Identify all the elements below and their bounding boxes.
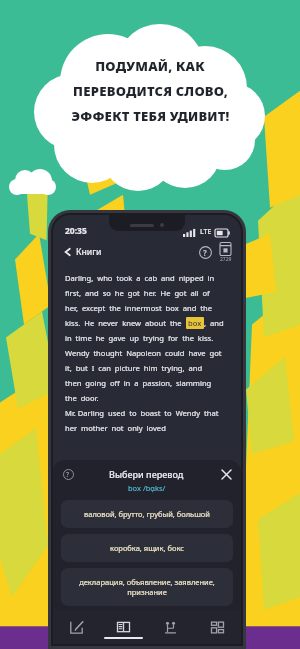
button[interactable]: Dictionary 2729 — [219, 242, 232, 263]
staticText: first, and so he got her. He got all of — [65, 288, 210, 298]
button[interactable]: коробка, ящик, бокс — [61, 534, 233, 562]
staticText: box — [188, 318, 202, 328]
staticText: 2729 — [220, 256, 232, 263]
staticText: ? — [66, 470, 70, 479]
button[interactable]: Help — [195, 242, 215, 262]
button[interactable]: Write — [53, 610, 100, 644]
button[interactable]: Hint — [61, 467, 75, 481]
staticText: ЭФФЕКТ ТЕБЯ УДИВИТ! — [71, 107, 230, 125]
staticText: ? — [203, 247, 207, 258]
staticText: it, but I can picture him trying, and — [65, 363, 203, 373]
staticText: Mr. Darling used to boast to Wendy that — [65, 408, 219, 418]
button[interactable]: Progress — [147, 610, 194, 644]
staticText: ПЕРЕВОДИТСЯ СЛОВО, — [73, 82, 228, 100]
staticText: then going off in a passion, slamming — [65, 378, 212, 388]
button[interactable]: декларация, объявление, заявление, призн… — [61, 568, 233, 606]
staticText: Wendy thought Napoleon could have got — [65, 348, 222, 358]
staticText: 20:35 — [65, 225, 87, 237]
staticText: Darling, who took a cab and nipped in — [65, 273, 215, 283]
staticText: LTE — [200, 227, 212, 237]
staticText: box /bɑ̩ks/ — [128, 483, 166, 493]
staticText: валовой, брутто, грубый, большой — [84, 509, 210, 519]
staticText: декларация, объявление, заявление, призн… — [79, 577, 215, 597]
staticText: Выбери перевод — [109, 468, 184, 480]
staticText: ПОДУМАЙ, КАК — [95, 57, 205, 75]
staticText: Книги — [76, 246, 102, 258]
button[interactable]: More — [194, 610, 241, 644]
staticText: her, except the innermost box and the — [65, 303, 212, 313]
staticText: the door. — [65, 393, 99, 403]
staticText: коробка, ящик, бокс — [110, 543, 184, 553]
button[interactable]: Books — [100, 610, 147, 644]
button[interactable]: валовой, брутто, грубый, большой — [61, 500, 233, 528]
staticText: in time he gave up trying for the kiss. — [65, 333, 214, 343]
button[interactable]: Книги — [61, 243, 104, 261]
button[interactable]: Close — [219, 467, 233, 481]
staticText: her mother not only loved — [65, 423, 166, 433]
staticText: , and — [204, 318, 224, 328]
staticText: kiss. He never knew about the — [65, 318, 186, 328]
